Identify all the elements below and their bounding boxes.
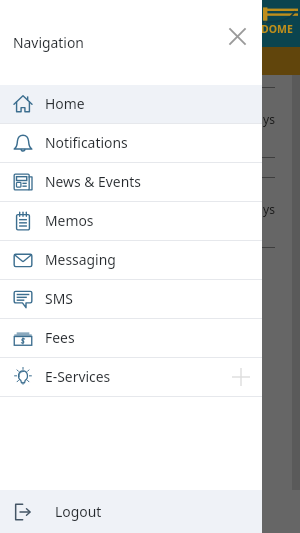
button[interactable]: Fees [0,319,262,357]
staticText: DOME [261,22,293,36]
staticText: 5 days [239,111,275,127]
button[interactable]: SMS [0,280,262,318]
button[interactable]: Messaging [0,241,262,279]
staticText: Logout [55,502,102,521]
staticText: News & Events [45,172,141,191]
staticText: Messaging [45,250,116,269]
staticText: 5 days [239,201,275,217]
button[interactable]: Memos [0,202,262,240]
staticText: SMS [45,289,73,308]
staticText: E-Services [45,367,111,386]
button[interactable]: Logout [0,490,262,533]
staticText: Navigation [13,33,84,52]
staticText: Home [45,94,85,113]
button[interactable]: E-Services [0,358,262,396]
staticText: Memos [45,211,94,230]
staticText: Notifications [45,133,128,152]
button[interactable]: Close [221,20,254,53]
button[interactable]: News & Events [0,163,262,201]
staticText: Fees [45,328,75,347]
button[interactable]: Notifications [0,124,262,162]
button[interactable]: Home [0,85,262,123]
